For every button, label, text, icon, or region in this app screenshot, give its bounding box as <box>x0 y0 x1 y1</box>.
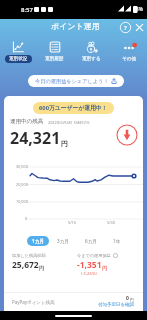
staticText: 運用する <box>82 56 101 62</box>
staticText: 円 <box>39 265 44 271</box>
button[interactable]: 付与予定日を確認 <box>98 302 135 308</box>
button[interactable]: 運用状況 <box>0 38 36 64</box>
staticText: 0 <box>25 216 28 221</box>
button[interactable]: 1カ月 <box>27 236 49 246</box>
button[interactable]: Close <box>133 21 146 34</box>
staticText: PayPayポイント残高 <box>12 299 55 305</box>
staticText: ? <box>124 24 127 32</box>
staticText: 30,000 <box>16 164 28 169</box>
button[interactable]: 運用する <box>73 38 110 64</box>
staticText: 運用状況 <box>9 56 28 62</box>
staticText: 追加した残高総額 <box>12 253 46 258</box>
staticText: 2022年6月4日 16時57分 <box>48 120 90 125</box>
button[interactable]: 運用履歴 <box>36 38 73 64</box>
button[interactable]: その他 <box>110 38 147 64</box>
staticText: 円 <box>61 139 68 148</box>
staticText: 24,321 <box>10 127 61 149</box>
staticText: 20,000 <box>16 182 28 187</box>
staticText: 5/16 <box>68 220 76 225</box>
staticText: 25,672 <box>12 259 39 271</box>
staticText: 6カ月 <box>85 238 97 244</box>
button[interactable]: Info <box>113 253 118 258</box>
button[interactable]: 今日の運用益をシェアしよう！ <box>28 75 124 87</box>
staticText: 運用履歴 <box>45 56 64 62</box>
staticText: 600万ユーザーが運用中！ <box>39 104 108 112</box>
staticText: 今日の運用益をシェアしよう！ <box>35 78 109 85</box>
staticText: ポイント運用 <box>51 21 100 31</box>
staticText: 今までの運用損益 <box>77 253 111 258</box>
staticText: 円 <box>129 297 135 302</box>
staticText: 93% <box>133 6 143 13</box>
button[interactable]: Help <box>119 21 132 34</box>
button[interactable]: Withdraw <box>116 124 138 146</box>
button[interactable]: 3カ月 <box>53 236 73 246</box>
staticText: -1,351 <box>77 259 102 271</box>
staticText: 10,000 <box>16 199 28 204</box>
staticText: 1年 <box>113 238 121 244</box>
staticText: 8:57 <box>21 6 33 14</box>
staticText: 0 <box>126 295 129 302</box>
button[interactable]: 6カ月 <box>81 236 101 246</box>
button[interactable]: 600万ユーザーが運用中！ <box>33 102 114 114</box>
staticText: 5/30 <box>107 220 115 225</box>
staticText: 円 <box>102 265 107 271</box>
staticText: (-5.26%) <box>81 271 97 277</box>
staticText: その他 <box>122 56 136 62</box>
staticText: 3カ月 <box>57 238 69 244</box>
button[interactable]: 1年 <box>109 236 125 246</box>
staticText: 1カ月 <box>32 238 44 244</box>
staticText: 運用中の残高 <box>10 118 44 125</box>
